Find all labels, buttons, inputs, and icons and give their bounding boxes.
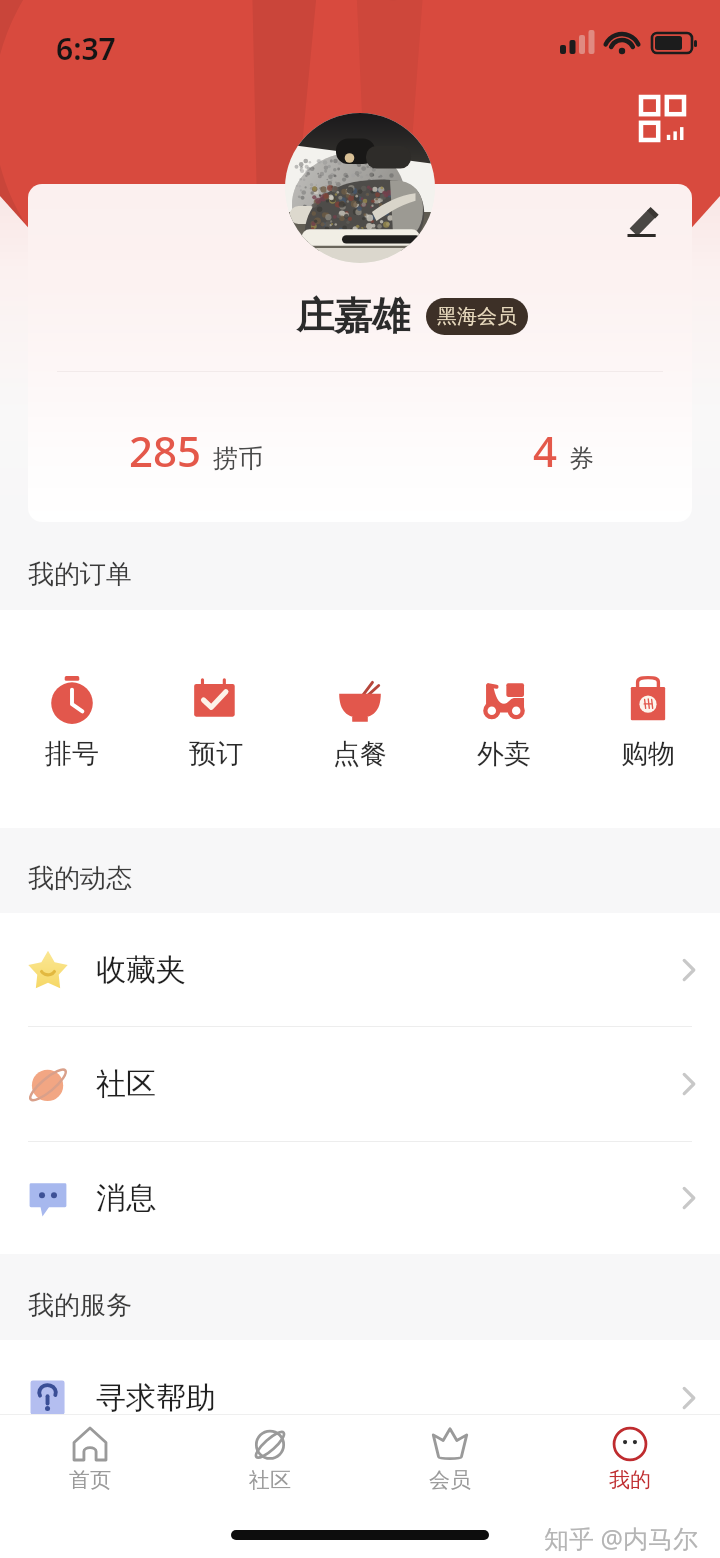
staticText: 捞币 bbox=[213, 443, 263, 474]
button[interactable]: 4 bbox=[533, 422, 594, 479]
staticText: 购物 bbox=[621, 737, 675, 771]
button[interactable]: 编辑资料 bbox=[616, 194, 672, 250]
staticText: 6:37 bbox=[56, 28, 116, 69]
staticText: 首页 bbox=[69, 1467, 111, 1493]
staticText: 预订 bbox=[189, 737, 243, 771]
staticText: 知乎 @内马尔 bbox=[544, 1521, 698, 1555]
button[interactable]: 购物 bbox=[576, 610, 720, 828]
staticText: 黑海会员 bbox=[437, 304, 517, 329]
staticText: 收藏夹 bbox=[96, 951, 186, 989]
staticText: 我的动态 bbox=[28, 862, 132, 895]
button[interactable]: 消息 bbox=[0, 1142, 720, 1254]
button[interactable]: 头像 bbox=[285, 113, 435, 263]
staticText: 我的服务 bbox=[28, 1289, 132, 1322]
staticText: 我的 bbox=[609, 1467, 651, 1493]
staticText: 我的订单 bbox=[28, 558, 132, 591]
button[interactable]: 285 bbox=[129, 422, 263, 479]
staticText: 消息 bbox=[96, 1179, 156, 1217]
staticText: 外卖 bbox=[477, 737, 531, 771]
staticText: 285 bbox=[129, 422, 202, 479]
staticText: 寻求帮助 bbox=[96, 1379, 216, 1417]
button[interactable]: 点餐 bbox=[288, 610, 432, 828]
button[interactable]: 社区 bbox=[180, 1415, 360, 1493]
button[interactable]: 寻求帮助 bbox=[0, 1340, 720, 1455]
staticText: 社区 bbox=[96, 1065, 156, 1103]
button[interactable]: 我的 bbox=[540, 1415, 720, 1493]
staticText: 排号 bbox=[45, 737, 99, 771]
button[interactable]: 黑海会员 bbox=[426, 298, 528, 335]
staticText: 会员 bbox=[429, 1467, 471, 1493]
button[interactable]: 收藏夹 bbox=[0, 913, 720, 1026]
button[interactable]: 首页 bbox=[0, 1415, 180, 1493]
button[interactable]: 会员 bbox=[360, 1415, 540, 1493]
staticText: 券 bbox=[569, 443, 594, 474]
button[interactable]: 社区 bbox=[0, 1027, 720, 1141]
button[interactable]: 外卖 bbox=[432, 610, 576, 828]
button[interactable]: 扫一扫 bbox=[634, 90, 690, 146]
button[interactable]: 预订 bbox=[144, 610, 288, 828]
staticText: 社区 bbox=[249, 1467, 291, 1493]
button[interactable]: 排号 bbox=[0, 610, 144, 828]
staticText: 4 bbox=[533, 422, 558, 479]
staticText: 点餐 bbox=[333, 737, 387, 771]
staticText: 庄嘉雄 bbox=[296, 292, 410, 340]
